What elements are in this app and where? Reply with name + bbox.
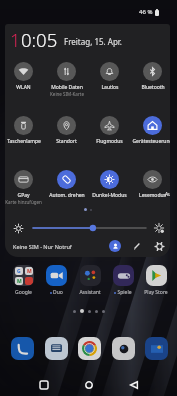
staticText: Taschenlampe — [7, 138, 41, 145]
staticText: M — [17, 278, 22, 285]
staticText: Spiele — [117, 289, 132, 296]
staticText: Keine SIM - Nur Notruf — [13, 243, 72, 250]
staticText: 0:05 — [21, 27, 58, 52]
staticText: Dunkel-Modus — [92, 192, 127, 199]
button[interactable]: Taschenlampe — [5, 116, 45, 170]
staticText: G — [17, 268, 21, 275]
button[interactable]: Standort — [45, 116, 88, 170]
button[interactable]: Recents — [34, 375, 54, 395]
button[interactable]: Autom. drehen — [45, 170, 88, 224]
staticText: Aug — [165, 191, 170, 198]
staticText: 1 — [10, 27, 21, 52]
button[interactable]: Lesemodus — [131, 170, 170, 224]
button[interactable]: Duo — [44, 265, 68, 296]
staticText: Lesemodus — [139, 192, 166, 199]
staticText: 46 % — [139, 8, 153, 16]
button[interactable]: Gerätesteuerung — [131, 116, 170, 170]
staticText: GPay — [17, 192, 30, 199]
staticText: Flugmodus — [96, 138, 123, 145]
staticText: WLAN — [16, 84, 31, 91]
button[interactable]: Settings — [153, 240, 165, 252]
button[interactable]: WLAN — [5, 62, 45, 116]
button[interactable]: Assistant — [78, 265, 102, 296]
staticText: Play Store — [144, 289, 168, 296]
button[interactable]: Mobile Daten — [45, 62, 88, 116]
button[interactable]: Camera — [112, 337, 135, 360]
button[interactable]: Edit — [131, 240, 143, 252]
button[interactable]: Home — [79, 375, 99, 395]
staticText: Lautlos — [101, 84, 119, 91]
button[interactable]: G — [11, 265, 35, 296]
staticText: Mobile Daten — [51, 84, 83, 91]
staticText: Google — [15, 289, 32, 296]
staticText: Keine SIM-Karte — [50, 91, 84, 97]
button[interactable]: Photos — [145, 337, 168, 360]
button[interactable]: Back — [124, 375, 144, 395]
button[interactable]: Play Store — [144, 265, 168, 296]
button[interactable]: GPay — [5, 170, 45, 224]
staticText: Standort — [56, 138, 77, 145]
button[interactable]: Lautlos — [88, 62, 131, 116]
staticText: M — [27, 268, 32, 275]
staticText: Duo — [53, 289, 63, 296]
staticText: Assistant — [79, 289, 101, 296]
staticText: Freitag, 15. Apr. — [64, 36, 122, 47]
button[interactable]: Bluetooth — [131, 62, 170, 116]
staticText: Gerätesteuerung — [132, 138, 170, 145]
button[interactable]: Phone — [11, 337, 34, 360]
button[interactable]: Messages — [45, 337, 68, 360]
button[interactable]: Dunkel-Modus — [88, 170, 131, 224]
button[interactable]: Flugmodus — [88, 116, 131, 170]
button[interactable]: User — [109, 240, 121, 252]
button[interactable]: Spiele — [111, 265, 135, 296]
staticText: Karte hinzufügen — [5, 199, 42, 205]
button[interactable]: Adaptive brightness — [153, 222, 165, 234]
button[interactable]: Chrome — [78, 337, 101, 360]
staticText: Autom. drehen — [49, 192, 85, 199]
staticText: Bluetooth — [141, 84, 165, 91]
